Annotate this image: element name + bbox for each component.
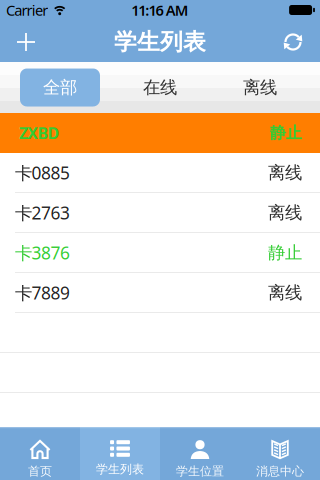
button[interactable]: Refresh [281,20,320,62]
button[interactable]: 学生列表 [80,427,160,480]
staticText: 学生列表 [96,462,144,477]
button[interactable]: 在线 [120,68,200,106]
staticText: 离线 [243,77,277,98]
staticText: 学生列表 [114,28,206,56]
button[interactable]: 卡0885 [0,153,320,193]
staticText: 静止 [268,242,302,263]
staticText: 卡0885 [15,161,70,184]
staticText: 离线 [268,202,302,223]
staticText: 11:16 AM [131,0,189,20]
button[interactable]: ZXBD [0,113,320,153]
staticText: 离线 [268,162,302,183]
button[interactable]: 卡3876 [0,233,320,273]
staticText: 卡3876 [15,241,70,264]
button[interactable]: 离线 [220,68,300,106]
staticText: 全部 [43,77,77,98]
button[interactable]: 卡7889 [0,273,320,313]
staticText: Carrier [6,0,48,20]
staticText: 卡2763 [15,201,70,224]
staticText: 学生位置 [176,464,224,479]
staticText: 静止 [270,123,302,143]
staticText: 卡7889 [15,281,70,304]
button[interactable]: Add student [0,20,45,62]
staticText: 在线 [143,77,177,98]
staticText: ZXBD [19,122,60,144]
button[interactable]: 卡2763 [0,193,320,233]
button[interactable]: 全部 [20,68,100,106]
button[interactable]: 消息中心 [240,427,320,480]
button[interactable]: 首页 [0,427,80,480]
staticText: 离线 [268,282,302,303]
button[interactable]: 学生位置 [160,427,240,480]
staticText: 消息中心 [256,464,304,479]
staticText: 首页 [28,464,52,479]
